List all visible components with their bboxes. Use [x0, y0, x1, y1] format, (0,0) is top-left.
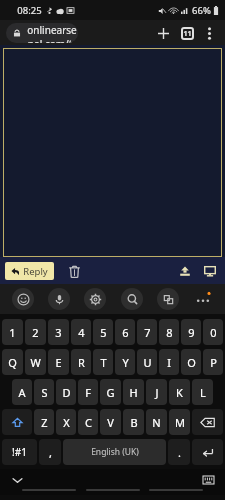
staticText: 1	[9, 325, 16, 340]
staticText: J	[155, 385, 159, 400]
staticText: 5	[100, 325, 107, 340]
staticText: L	[200, 385, 206, 400]
staticText: 2	[32, 325, 39, 340]
button[interactable]: P	[203, 349, 223, 375]
button[interactable]: Change keyboard	[199, 471, 217, 489]
button[interactable]: 4	[71, 319, 91, 345]
button[interactable]: Q	[2, 349, 23, 375]
button[interactable]: More	[193, 289, 213, 309]
button[interactable]: 8	[159, 319, 179, 345]
button[interactable]: 3	[48, 319, 69, 345]
staticText: R	[78, 355, 85, 370]
button[interactable]: W	[25, 349, 46, 375]
staticText: 3	[55, 325, 62, 340]
button[interactable]: I	[159, 349, 179, 375]
staticText: 11	[183, 29, 192, 39]
staticText: 4	[78, 325, 85, 340]
button[interactable]: C	[78, 409, 98, 435]
button[interactable]: O	[181, 349, 201, 375]
staticText: W	[30, 355, 41, 370]
button[interactable]: 1	[2, 319, 23, 345]
button[interactable]: Preview	[200, 261, 220, 281]
staticText: ,	[49, 445, 52, 460]
button[interactable]: Enter	[192, 439, 223, 465]
button[interactable]: A	[12, 379, 32, 405]
button[interactable]: More options	[199, 23, 219, 43]
staticText: V	[107, 415, 114, 430]
button[interactable]: Y	[115, 349, 135, 375]
button[interactable]: R	[71, 349, 91, 375]
staticText: onlinearsenal.com/t/site-fe	[26, 23, 78, 43]
button[interactable]: Tabs	[175, 21, 199, 45]
staticText: O	[187, 355, 196, 370]
button[interactable]: New tab	[151, 21, 175, 45]
staticText: S	[41, 385, 48, 400]
button[interactable]: U	[137, 349, 157, 375]
staticText: H	[129, 385, 138, 400]
button[interactable]: M	[169, 409, 190, 435]
button[interactable]: 5	[93, 319, 113, 345]
staticText: English (UK)	[91, 446, 139, 458]
button[interactable]: S	[34, 379, 54, 405]
button[interactable]: B	[123, 409, 144, 435]
staticText: .	[178, 445, 181, 460]
staticText: F	[85, 385, 91, 400]
staticText: M	[175, 415, 185, 430]
button[interactable]: Space	[63, 439, 166, 465]
button[interactable]: Delete	[64, 261, 84, 281]
button[interactable]: L	[192, 379, 213, 405]
staticText: 6	[122, 325, 129, 340]
button[interactable]: K	[169, 379, 190, 405]
staticText: E	[55, 355, 62, 370]
staticText: G	[106, 385, 115, 400]
button[interactable]: Symbols	[2, 439, 37, 465]
staticText: 0	[210, 325, 217, 340]
button[interactable]: Shift	[2, 409, 32, 435]
staticText: Y	[122, 355, 129, 370]
button[interactable]: Z	[34, 409, 54, 435]
button[interactable]: Period	[168, 439, 190, 465]
button[interactable]: Search	[121, 288, 143, 310]
button[interactable]: G	[100, 379, 121, 405]
button[interactable]: Upload	[175, 261, 195, 281]
button[interactable]: V	[100, 409, 121, 435]
button[interactable]: J	[146, 379, 167, 405]
button[interactable]: X	[56, 409, 76, 435]
staticText: 7	[144, 325, 151, 340]
staticText: !#1	[12, 445, 27, 459]
button[interactable]: Reply	[5, 262, 54, 280]
button[interactable]: Backspace	[192, 409, 223, 435]
button[interactable]: Voice input	[48, 288, 70, 310]
button[interactable]: 7	[137, 319, 157, 345]
staticText: D	[62, 385, 71, 400]
button[interactable]: 0	[203, 319, 223, 345]
button[interactable]: 6	[115, 319, 135, 345]
staticText: N	[152, 415, 161, 430]
staticText: B	[130, 415, 138, 430]
staticText: T	[100, 355, 107, 370]
staticText: U	[143, 355, 152, 370]
staticText: A	[18, 385, 26, 400]
button[interactable]: T	[93, 349, 113, 375]
staticText: P	[210, 355, 217, 370]
button[interactable]: onlinearsenal.com/t/site-fe	[6, 23, 78, 43]
button[interactable]: Translate	[157, 288, 179, 310]
staticText: 8	[166, 325, 173, 340]
button[interactable]: H	[123, 379, 144, 405]
button[interactable]: 9	[181, 319, 201, 345]
staticText: I	[167, 355, 171, 370]
button[interactable]: F	[78, 379, 98, 405]
button[interactable]	[3, 48, 222, 257]
button[interactable]: Comma	[39, 439, 61, 465]
button[interactable]: E	[48, 349, 69, 375]
button[interactable]: 2	[25, 319, 46, 345]
button[interactable]: D	[56, 379, 76, 405]
button[interactable]: Hide keyboard	[8, 471, 26, 489]
button[interactable]: N	[146, 409, 167, 435]
button[interactable]: Emoji	[12, 288, 34, 310]
button[interactable]: Settings	[84, 288, 106, 310]
staticText: 66%	[192, 4, 211, 17]
